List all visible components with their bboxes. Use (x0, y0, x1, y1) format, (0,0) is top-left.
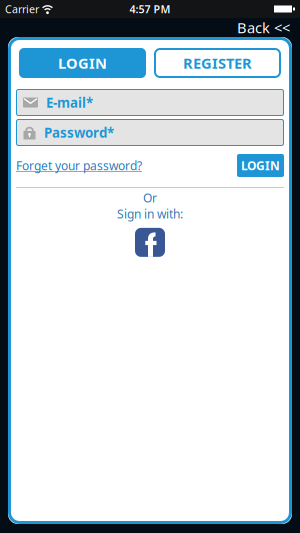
staticText: Sign in with: (117, 206, 183, 222)
button[interactable]: LOGIN (237, 154, 284, 177)
staticText: LOGIN (241, 157, 280, 173)
button[interactable] (135, 228, 165, 257)
staticText: LOGIN (58, 53, 107, 73)
button[interactable]: E-mail* (16, 89, 284, 116)
button[interactable]: Forget your password? (16, 157, 142, 173)
staticText: Or (143, 190, 157, 206)
staticText: Forget your password? (16, 157, 142, 173)
staticText: REGISTER (183, 53, 252, 73)
button[interactable]: REGISTER (154, 48, 281, 78)
button[interactable]: Back << (237, 18, 290, 37)
button[interactable]: Password* (16, 119, 284, 146)
button[interactable]: LOGIN (19, 48, 146, 78)
staticText: Carrier (5, 2, 39, 16)
staticText: 4:57 PM (129, 2, 170, 16)
staticText: E-mail* (46, 94, 93, 111)
staticText: Password* (44, 124, 114, 141)
staticText: Back << (237, 18, 290, 37)
